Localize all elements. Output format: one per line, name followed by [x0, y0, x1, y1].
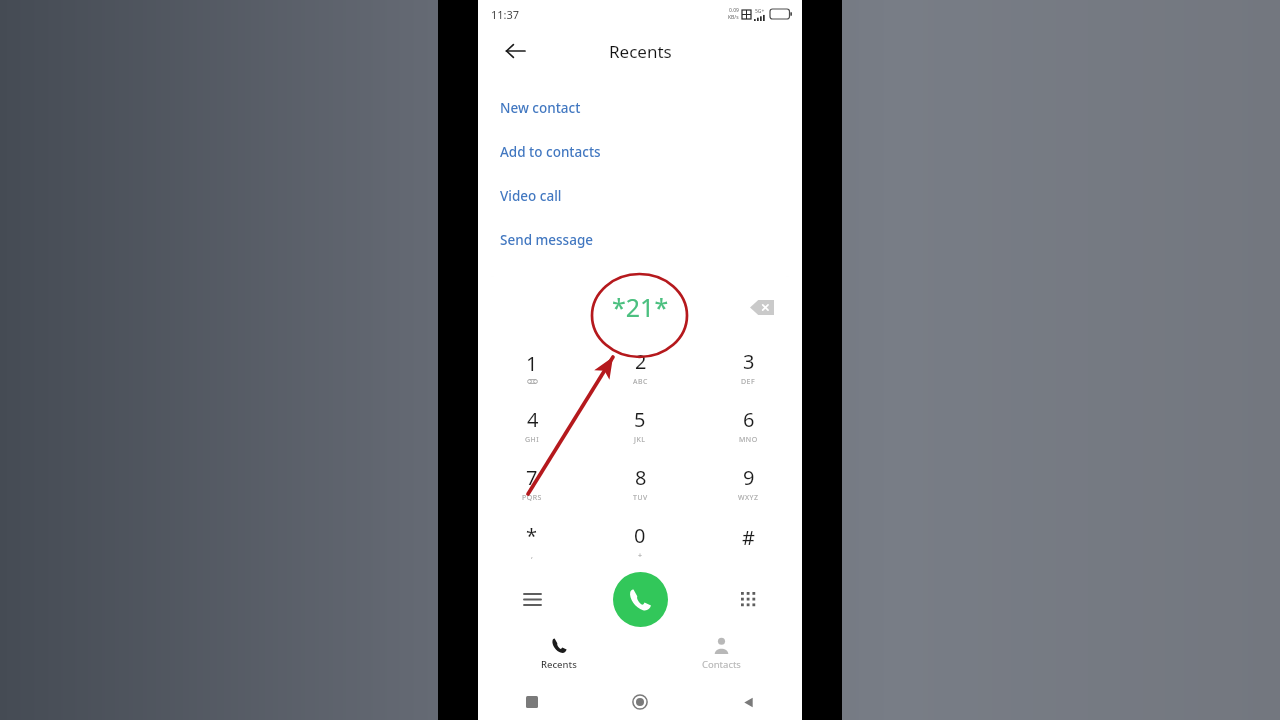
button[interactable]: 6	[694, 396, 802, 454]
staticText: ABC	[633, 377, 648, 387]
button[interactable]: New contact	[478, 86, 802, 130]
staticText: Recents	[609, 40, 672, 63]
staticText: 11:37	[491, 7, 520, 22]
staticText: #	[742, 524, 755, 551]
button[interactable]: Contacts	[640, 628, 802, 680]
staticText: 0	[634, 522, 646, 549]
button[interactable]: Backspace	[746, 291, 778, 323]
staticText: Video call	[500, 187, 562, 205]
button[interactable]: Hide dialpad	[694, 570, 802, 628]
staticText: 4	[527, 406, 539, 433]
staticText: 7	[526, 464, 538, 491]
staticText: GHI	[525, 435, 540, 445]
button[interactable]: 9	[694, 454, 802, 512]
button[interactable]: Back	[694, 684, 802, 720]
staticText: 5G+	[755, 8, 765, 15]
button[interactable]: 8	[586, 454, 694, 512]
staticText: 9	[743, 464, 755, 491]
staticText: Send message	[500, 231, 594, 249]
staticText: KB/s	[728, 14, 739, 21]
staticText: Contacts	[702, 658, 741, 671]
button[interactable]: 0	[586, 512, 694, 570]
staticText: Add to contacts	[500, 143, 601, 161]
button[interactable]: Send message	[478, 218, 802, 262]
staticText: ,	[531, 551, 534, 561]
staticText: *21*	[612, 290, 669, 324]
button[interactable]: 4	[478, 396, 586, 454]
button[interactable]: 5	[586, 396, 694, 454]
button[interactable]: #	[694, 512, 802, 570]
staticText: 8	[635, 464, 647, 491]
staticText: New contact	[500, 99, 581, 117]
staticText: Recents	[541, 658, 577, 671]
button[interactable]: Back	[500, 36, 530, 66]
staticText: WXYZ	[738, 493, 759, 503]
button[interactable]: Recents	[478, 628, 640, 680]
staticText: TUV	[633, 493, 648, 503]
button[interactable]: 7	[478, 454, 586, 512]
button[interactable]: Call	[613, 572, 668, 627]
button[interactable]: Add to contacts	[478, 130, 802, 174]
staticText: 6	[743, 406, 755, 433]
staticText: 0.09	[729, 7, 739, 14]
staticText: +	[638, 551, 643, 561]
button[interactable]: 2	[586, 338, 694, 396]
button[interactable]: *	[478, 512, 586, 570]
button[interactable]: Home	[586, 684, 694, 720]
staticText: *	[526, 522, 538, 549]
button[interactable]: 3	[694, 338, 802, 396]
staticText: 3	[743, 348, 755, 375]
button[interactable]: 1	[478, 338, 586, 396]
button[interactable]: Call settings	[478, 570, 586, 628]
staticText: DEF	[741, 377, 756, 387]
staticText: 1	[526, 350, 538, 377]
staticText: 2	[635, 348, 647, 375]
staticText: MNO	[739, 435, 758, 445]
staticText: 5	[634, 406, 646, 433]
button[interactable]: Video call	[478, 174, 802, 218]
button[interactable]: Recent apps	[478, 684, 586, 720]
staticText: JKL	[634, 435, 646, 445]
staticText: PQRS	[522, 493, 542, 503]
